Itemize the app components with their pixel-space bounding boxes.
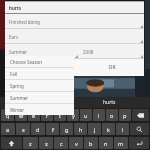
button[interactable]: c: [54, 137, 68, 149]
button[interactable]: 2008: [79, 44, 144, 59]
staticText: o: [110, 112, 114, 119]
button[interactable]: y: [67, 109, 79, 121]
staticText: y: [72, 112, 75, 119]
button[interactable]: h: [74, 123, 87, 135]
button[interactable]: Summer: [5, 92, 74, 104]
button[interactable]: Enter: [129, 137, 149, 149]
staticText: s: [22, 126, 25, 133]
staticText: Finished doing: [9, 19, 41, 25]
button[interactable]: a: [1, 123, 15, 135]
button[interactable]: Shift: [1, 137, 22, 149]
staticText: hurts: [103, 99, 116, 106]
staticText: z: [29, 140, 32, 147]
button[interactable]: d: [31, 123, 45, 135]
button[interactable]: OK: [79, 59, 144, 76]
button[interactable]: q: [1, 109, 14, 121]
staticText: Choose Season: [10, 59, 43, 65]
staticText: m: [118, 140, 124, 147]
button[interactable]: e: [28, 109, 40, 121]
button[interactable]: b: [84, 137, 98, 149]
staticText: tt's: [30, 99, 38, 106]
staticText: r: [46, 112, 49, 119]
staticText: f: [52, 126, 54, 133]
staticText: i: [98, 112, 100, 119]
button[interactable]: j: [88, 123, 101, 135]
button[interactable]: Spring: [5, 80, 74, 92]
staticText: n: [104, 140, 108, 147]
button[interactable]: r: [41, 109, 53, 121]
staticText: h: [79, 126, 83, 133]
staticText: t: [59, 112, 61, 119]
button[interactable]: Ears: [5, 29, 144, 44]
button[interactable]: hurts: [5, 2, 144, 14]
staticText: Summer: [10, 95, 29, 101]
button[interactable]: t: [54, 109, 66, 121]
staticText: w: [19, 112, 24, 119]
staticText: Fall: [10, 71, 18, 77]
button[interactable]: Search: [130, 123, 149, 135]
button[interactable]: o: [106, 109, 118, 121]
staticText: hurts: [9, 5, 22, 11]
button[interactable]: tt's: [0, 97, 68, 108]
button[interactable]: w: [15, 109, 27, 121]
button[interactable]: i: [93, 109, 105, 121]
button[interactable]: f: [46, 123, 59, 135]
staticText: b: [89, 140, 93, 147]
staticText: Ears: [9, 34, 19, 40]
button[interactable]: n: [99, 137, 113, 149]
button[interactable]: hurts: [69, 97, 150, 108]
staticText: j: [94, 126, 96, 133]
button[interactable]: s: [16, 123, 30, 135]
staticText: x: [45, 140, 48, 147]
staticText: c: [60, 140, 63, 147]
staticText: Summer: [9, 49, 28, 55]
button[interactable]: z: [23, 137, 38, 149]
button[interactable]: Fall: [5, 68, 74, 80]
staticText: OK: [108, 64, 116, 71]
button[interactable]: g: [60, 123, 73, 135]
staticText: e: [32, 112, 36, 119]
button[interactable]: p: [119, 109, 131, 121]
staticText: g: [65, 126, 69, 133]
staticText: k: [107, 126, 110, 133]
button[interactable]: Delete: [132, 109, 149, 121]
button[interactable]: Choose Season: [5, 56, 74, 68]
button[interactable]: l: [116, 123, 129, 135]
staticText: 2008: [83, 49, 94, 55]
staticText: d: [36, 126, 40, 133]
staticText: a: [6, 126, 10, 133]
staticText: Winter: [10, 107, 25, 113]
staticText: l: [122, 126, 124, 133]
staticText: Spring: [10, 83, 24, 89]
button[interactable]: v: [69, 137, 83, 149]
staticText: q: [6, 112, 10, 119]
button[interactable]: m: [114, 137, 128, 149]
button[interactable]: k: [102, 123, 115, 135]
button[interactable]: Winter: [5, 104, 74, 115]
staticText: v: [75, 140, 78, 147]
button[interactable]: x: [39, 137, 53, 149]
button[interactable]: Summer: [5, 44, 79, 59]
button[interactable]: u: [80, 109, 92, 121]
staticText: p: [123, 112, 127, 119]
button[interactable]: Finished doing: [5, 14, 144, 29]
staticText: u: [84, 112, 88, 119]
